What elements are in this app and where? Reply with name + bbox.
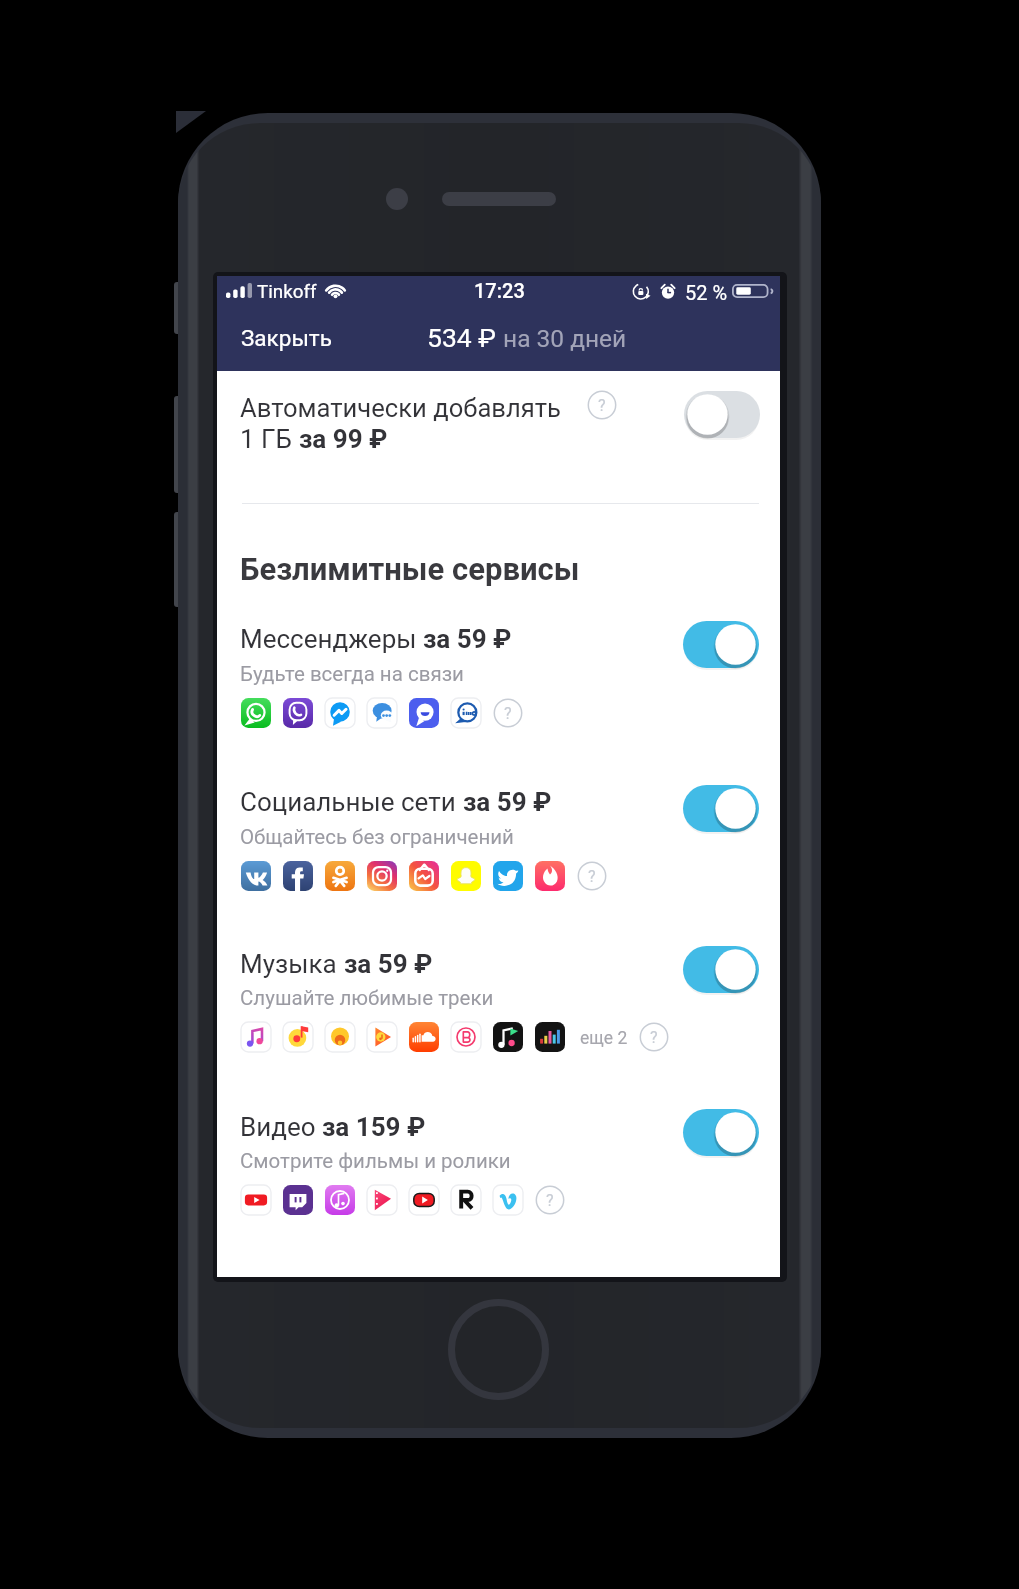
staticText: Общайтесь без ограничений: [240, 825, 514, 849]
staticText: Закрыть: [241, 325, 332, 351]
button[interactable]: Подробнее: [535, 1185, 565, 1215]
staticText: Музыка: [240, 949, 344, 979]
staticText: за 59 ₽: [463, 787, 552, 817]
button[interactable]: Подробнее: [577, 861, 607, 891]
staticText: Мессенджеры: [240, 624, 423, 654]
button[interactable]: [217, 941, 780, 1061]
button[interactable]: [217, 1104, 780, 1224]
button[interactable]: Закрыть: [230, 319, 343, 357]
staticText: 1 ГБ: [240, 424, 299, 454]
staticText: 534 ₽: [427, 322, 503, 353]
staticText: ?: [588, 867, 596, 886]
staticText: ?: [598, 396, 606, 415]
staticText: за 59 ₽: [423, 624, 512, 654]
staticText: Tinkoff: [257, 281, 317, 303]
staticText: на 30 дней: [503, 324, 627, 353]
staticText: Слушайте любимые треки: [240, 986, 494, 1010]
button[interactable]: Подробнее: [493, 698, 523, 728]
staticText: Будьте всегда на связи: [240, 662, 464, 686]
staticText: Видео: [240, 1112, 322, 1142]
staticText: 52 %: [685, 281, 728, 304]
button[interactable]: Включено: [683, 785, 759, 832]
staticText: ?: [504, 704, 512, 723]
staticText: ?: [650, 1028, 658, 1047]
staticText: ?: [546, 1191, 554, 1210]
button[interactable]: Включено: [683, 621, 759, 668]
staticText: Социальные сети: [240, 787, 463, 817]
staticText: 17:23: [474, 279, 525, 302]
staticText: Автоматически добавлять: [240, 393, 561, 423]
button[interactable]: [217, 616, 780, 736]
staticText: за 59 ₽: [344, 949, 433, 979]
button[interactable]: Включено: [683, 1109, 759, 1156]
button[interactable]: Включено: [683, 946, 759, 993]
staticText: еще 2: [580, 1028, 628, 1049]
button[interactable]: Подробнее: [587, 390, 617, 420]
staticText: за 99 ₽: [299, 424, 388, 454]
staticText: Смотрите фильмы и ролики: [240, 1149, 511, 1173]
button[interactable]: Выключено: [684, 391, 760, 438]
staticText: за 159 ₽: [322, 1112, 426, 1142]
button[interactable]: [217, 779, 780, 899]
staticText: Безлимитные сервисы: [240, 551, 580, 587]
button[interactable]: Подробнее: [639, 1022, 669, 1052]
button[interactable]: [217, 386, 780, 464]
